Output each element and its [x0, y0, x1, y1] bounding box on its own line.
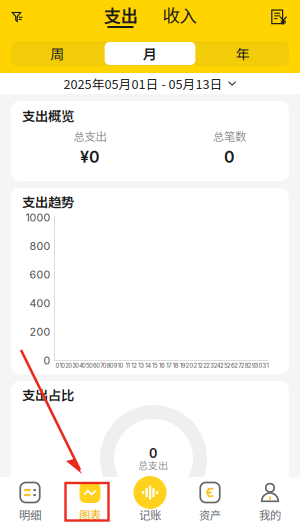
button[interactable]: 图表: [60, 477, 120, 524]
staticText: 收入: [162, 2, 196, 28]
button[interactable]: 2025年05月01日 - 05月13日: [0, 73, 300, 94]
staticText: 11: [125, 362, 129, 369]
staticText: 29: [248, 362, 256, 369]
button[interactable]: Filter: [0, 0, 34, 34]
staticText: 月: [143, 43, 157, 64]
staticText: 周: [50, 43, 64, 64]
staticText: 27: [234, 362, 241, 369]
button[interactable]: 收入: [150, 0, 209, 34]
button[interactable]: 年: [196, 41, 289, 66]
staticText: 24: [214, 362, 221, 369]
button[interactable]: 资产: [180, 477, 240, 524]
staticText: 28: [241, 362, 249, 369]
staticText: 08: [103, 362, 111, 369]
staticText: 04: [75, 362, 83, 369]
staticText: 总支出: [138, 458, 168, 472]
staticText: 07: [96, 362, 103, 369]
staticText: 16: [159, 362, 165, 369]
button[interactable]: 月: [104, 41, 196, 66]
staticText: 20: [186, 362, 194, 369]
staticText: 支出趋势: [22, 192, 74, 211]
button[interactable]: 支出: [91, 0, 150, 34]
staticText: 31: [262, 362, 268, 369]
button[interactable]: 明细: [0, 477, 60, 524]
staticText: 图表: [79, 506, 101, 523]
staticText: 2025年05月01日 - 05月13日: [63, 74, 222, 93]
staticText: 我的: [259, 506, 281, 523]
staticText: 资产: [199, 506, 221, 523]
staticText: 0: [224, 147, 235, 167]
staticText: 明细: [19, 506, 41, 523]
button[interactable]: 我的: [240, 477, 300, 524]
staticText: 年: [236, 43, 250, 64]
staticText: 22: [199, 362, 207, 369]
staticText: 支出占比: [22, 385, 74, 404]
staticText: 支出: [103, 2, 137, 28]
staticText: 21: [193, 362, 199, 369]
staticText: 14: [145, 362, 151, 369]
staticText: 13: [138, 362, 144, 369]
staticText: 400: [29, 297, 50, 310]
staticText: 200: [29, 325, 50, 338]
staticText: 06: [89, 362, 97, 369]
staticText: 600: [29, 268, 50, 281]
staticText: 10: [117, 362, 123, 369]
staticText: 19: [180, 362, 186, 369]
staticText: 15: [152, 362, 158, 369]
staticText: ¥0: [80, 147, 100, 167]
staticText: 总支出: [73, 128, 106, 144]
staticText: 18: [173, 362, 179, 369]
staticText: 17: [166, 362, 171, 369]
staticText: 02: [61, 362, 69, 369]
staticText: 09: [110, 362, 118, 369]
staticText: 01: [55, 362, 61, 369]
staticText: 1000: [25, 211, 50, 224]
staticText: 26: [227, 362, 235, 369]
staticText: 30: [255, 362, 263, 369]
staticText: 800: [29, 240, 50, 252]
button[interactable]: 周: [11, 41, 104, 66]
staticText: 支出概览: [22, 106, 74, 125]
staticText: 0: [43, 354, 50, 367]
button[interactable]: 记账: [120, 477, 180, 524]
staticText: 05: [82, 362, 90, 369]
staticText: 23: [206, 362, 214, 369]
staticText: 总笔数: [213, 128, 246, 144]
staticText: 03: [68, 362, 76, 369]
button[interactable]: Bills: [262, 0, 296, 34]
staticText: 记账: [139, 506, 161, 523]
staticText: 12: [131, 362, 137, 369]
staticText: 0: [149, 446, 157, 461]
staticText: 25: [220, 362, 228, 369]
